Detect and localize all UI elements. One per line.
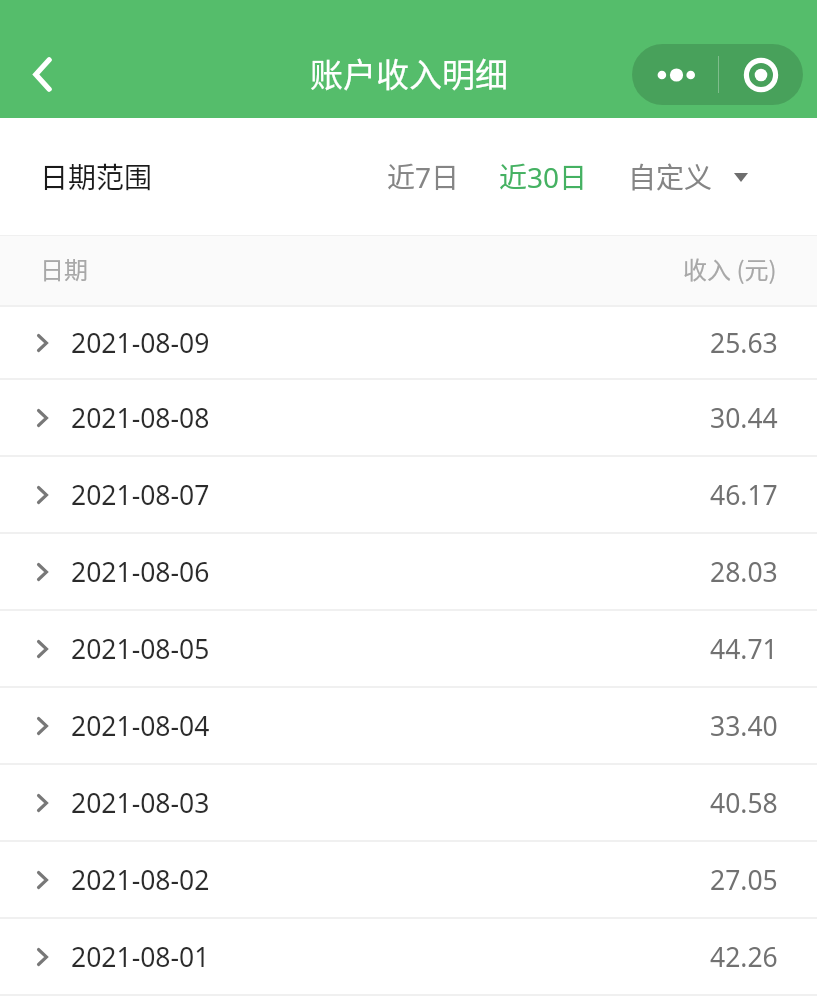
staticText: 账户收入明细 [310,49,508,97]
staticText: 近7日 [387,156,460,197]
button[interactable]: 2021-08-09 [0,307,817,378]
button[interactable]: 2021-08-08 [0,380,817,455]
staticText: 2021-08-04 [71,708,210,744]
staticText: 2021-08-03 [71,785,210,821]
staticText: 33.40 [710,708,778,744]
button[interactable]: 2021-08-02 [0,842,817,917]
staticText: 日期 [40,251,88,286]
staticText: 2021-08-02 [71,862,210,898]
staticText: 2021-08-01 [71,939,210,975]
staticText: 28.03 [710,554,778,590]
staticText: 日期范围 [40,156,153,197]
staticText: 42.26 [710,939,778,975]
staticText: 30.44 [710,400,778,436]
staticText: 2021-08-08 [71,400,210,436]
staticText: 25.63 [710,325,778,361]
staticText: 收入 (元) [683,251,777,286]
staticText: 近30日 [499,156,588,197]
button[interactable]: 2021-08-01 [0,919,817,994]
button[interactable]: More options [632,44,718,105]
staticText: 46.17 [710,477,778,513]
staticText: 自定义 [628,156,713,197]
staticText: 2021-08-06 [71,554,210,590]
staticText: 44.71 [710,631,778,667]
button[interactable]: Close mini program [719,44,803,105]
button[interactable]: 2021-08-03 [0,765,817,840]
button[interactable]: 自定义 [618,142,758,211]
button[interactable]: 近7日 [377,142,470,211]
staticText: 2021-08-05 [71,631,210,667]
button[interactable]: 2021-08-04 [0,688,817,763]
button[interactable]: 2021-08-05 [0,611,817,686]
staticText: 2021-08-07 [71,477,210,513]
staticText: 27.05 [710,862,778,898]
button[interactable]: 近30日 [489,142,598,211]
staticText: 2021-08-09 [71,325,210,361]
staticText: 40.58 [710,785,778,821]
button[interactable]: 2021-08-06 [0,534,817,609]
button[interactable]: Back [11,43,73,105]
button[interactable]: 2021-08-07 [0,457,817,532]
